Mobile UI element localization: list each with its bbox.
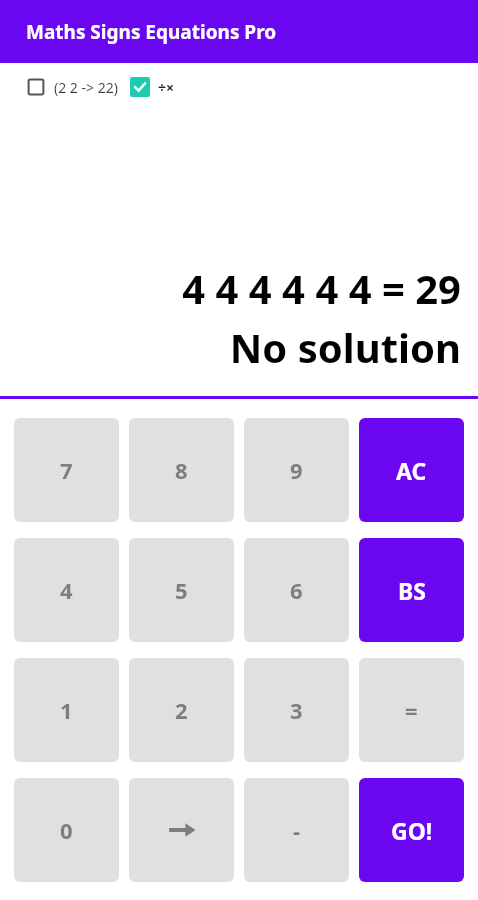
- staticText: 7: [60, 455, 73, 485]
- button[interactable]: 7: [14, 418, 119, 522]
- staticText: 4 4 4 4 4 4 = 29: [182, 261, 461, 315]
- staticText: 4: [60, 575, 73, 605]
- staticText: BS: [398, 575, 426, 606]
- button[interactable]: 6: [244, 538, 349, 642]
- staticText: 6: [290, 575, 303, 605]
- staticText: Maths Signs Equations Pro: [26, 19, 277, 45]
- button[interactable]: ÷×: [130, 77, 175, 97]
- staticText: -: [293, 815, 301, 845]
- button[interactable]: 1: [14, 658, 119, 762]
- staticText: 5: [175, 575, 188, 605]
- staticText: GO!: [391, 815, 433, 846]
- button[interactable]: 0: [14, 778, 119, 882]
- button[interactable]: (2 2 -> 22): [26, 77, 118, 97]
- staticText: =: [405, 695, 418, 725]
- button[interactable]: AC: [359, 418, 464, 522]
- staticText: 2: [175, 695, 188, 725]
- staticText: No solution: [229, 320, 461, 374]
- staticText: 8: [175, 455, 188, 485]
- button[interactable]: 2: [129, 658, 234, 762]
- button[interactable]: GO!: [359, 778, 464, 882]
- staticText: (2 2 -> 22): [54, 78, 118, 97]
- staticText: 1: [60, 695, 73, 725]
- button[interactable]: 3: [244, 658, 349, 762]
- button[interactable]: 8: [129, 418, 234, 522]
- button[interactable]: 5: [129, 538, 234, 642]
- button[interactable]: =: [359, 658, 464, 762]
- button[interactable]: Next: [129, 778, 234, 882]
- button[interactable]: 4: [14, 538, 119, 642]
- staticText: ÷×: [158, 78, 175, 97]
- button[interactable]: BS: [359, 538, 464, 642]
- button[interactable]: -: [244, 778, 349, 882]
- staticText: 9: [290, 455, 303, 485]
- staticText: 3: [290, 695, 303, 725]
- staticText: 0: [60, 815, 73, 845]
- button[interactable]: 9: [244, 418, 349, 522]
- staticText: AC: [396, 455, 427, 486]
